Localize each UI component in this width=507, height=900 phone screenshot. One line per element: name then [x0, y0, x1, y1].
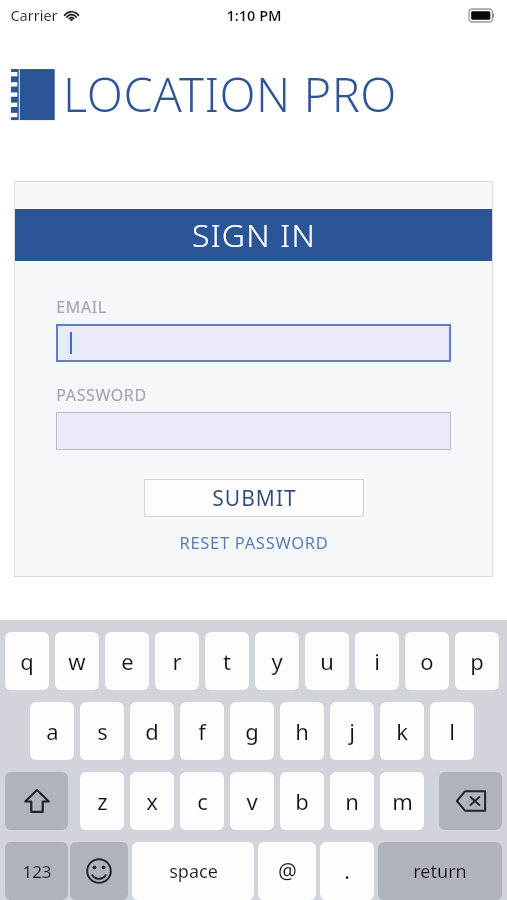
staticText: y — [271, 646, 283, 676]
staticText: return — [413, 859, 467, 884]
staticText: c — [197, 786, 208, 816]
staticText: f — [198, 716, 206, 746]
button[interactable]: d — [130, 702, 174, 760]
staticText: PASSWORD — [56, 384, 147, 406]
staticText: p — [470, 646, 484, 676]
button[interactable]: space — [132, 842, 254, 900]
other: Backspace — [456, 790, 486, 812]
button[interactable]: z — [80, 772, 124, 830]
staticText: k — [396, 716, 408, 746]
staticText: a — [46, 716, 59, 746]
button[interactable]: j — [330, 702, 374, 760]
button[interactable] — [56, 324, 451, 362]
button[interactable]: k — [380, 702, 424, 760]
button[interactable]: @ — [258, 842, 316, 900]
staticText: i — [374, 646, 380, 676]
staticText: EMAIL — [56, 296, 107, 318]
button[interactable]: RESET PASSWORD — [173, 529, 335, 555]
button[interactable]: o — [405, 632, 449, 690]
button[interactable]: c — [180, 772, 224, 830]
staticText: e — [121, 646, 134, 676]
staticText: g — [245, 716, 259, 746]
button[interactable]: y — [255, 632, 299, 690]
staticText: b — [295, 786, 309, 816]
button[interactable]: n — [330, 772, 374, 830]
staticText: q — [20, 646, 34, 676]
staticText: Carrier — [10, 5, 58, 25]
other: Emoji keyboard — [86, 858, 112, 884]
staticText: m — [392, 786, 413, 816]
staticText: RESET PASSWORD — [179, 531, 329, 553]
button[interactable]: Shift — [5, 772, 68, 830]
button[interactable]: v — [230, 772, 274, 830]
button[interactable]: w — [55, 632, 99, 690]
button[interactable]: Backspace — [439, 772, 502, 830]
button[interactable]: Emoji keyboard — [70, 842, 128, 900]
staticText: space — [169, 859, 218, 884]
button[interactable]: p — [455, 632, 499, 690]
staticText: w — [68, 646, 86, 676]
staticText: r — [172, 646, 182, 676]
button[interactable]: r — [155, 632, 199, 690]
button[interactable]: q — [5, 632, 49, 690]
staticText: @ — [278, 857, 297, 886]
staticText: u — [320, 646, 334, 676]
staticText: t — [223, 646, 231, 676]
staticText: h — [295, 716, 309, 746]
button[interactable]: g — [230, 702, 274, 760]
button[interactable] — [56, 412, 451, 450]
button[interactable]: e — [105, 632, 149, 690]
staticText: n — [345, 786, 359, 816]
button[interactable]: f — [180, 702, 224, 760]
staticText: d — [145, 716, 159, 746]
button[interactable]: 123 — [5, 842, 68, 900]
staticText: v — [246, 786, 258, 816]
button[interactable]: SUBMIT — [144, 479, 364, 517]
button[interactable]: u — [305, 632, 349, 690]
button[interactable]: s — [80, 702, 124, 760]
button[interactable]: h — [280, 702, 324, 760]
staticText: LOCATION PRO — [63, 62, 397, 126]
button[interactable]: t — [205, 632, 249, 690]
staticText: SUBMIT — [212, 484, 297, 513]
button[interactable]: i — [355, 632, 399, 690]
staticText: s — [97, 716, 108, 746]
other: Shift — [24, 788, 50, 814]
button[interactable]: b — [280, 772, 324, 830]
staticText: j — [349, 716, 355, 746]
staticText: x — [146, 786, 158, 816]
staticText: o — [420, 646, 434, 676]
button[interactable]: m — [380, 772, 424, 830]
staticText: 1:10 PM — [226, 5, 282, 25]
staticText: z — [97, 786, 108, 816]
button[interactable]: l — [430, 702, 474, 760]
button[interactable]: a — [30, 702, 74, 760]
button[interactable]: x — [130, 772, 174, 830]
button[interactable]: . — [320, 842, 374, 900]
staticText: . — [344, 857, 350, 886]
staticText: l — [449, 716, 455, 746]
staticText: SIGN IN — [192, 213, 316, 257]
staticText: 123 — [22, 860, 52, 883]
button[interactable]: return — [378, 842, 502, 900]
